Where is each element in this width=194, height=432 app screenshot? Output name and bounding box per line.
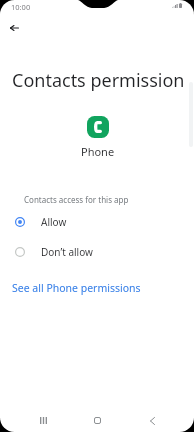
staticText: 10:00 bbox=[11, 2, 31, 12]
staticText: See all Phone permissions bbox=[12, 281, 141, 295]
button[interactable]: Don’t allow bbox=[0, 237, 194, 267]
staticText: Allow bbox=[41, 215, 67, 229]
staticText: Contacts permission bbox=[12, 68, 185, 93]
staticText: Phone bbox=[81, 144, 115, 159]
button[interactable]: Allow bbox=[0, 207, 194, 237]
button[interactable]: Back bbox=[139, 408, 165, 432]
button[interactable]: Back bbox=[2, 16, 26, 40]
button[interactable]: Home bbox=[85, 408, 111, 432]
staticText: Don’t allow bbox=[41, 245, 93, 259]
staticText: Contacts access for this app bbox=[24, 194, 129, 205]
button[interactable]: See all Phone permissions bbox=[6, 276, 147, 300]
button[interactable]: Recent apps bbox=[30, 408, 57, 432]
